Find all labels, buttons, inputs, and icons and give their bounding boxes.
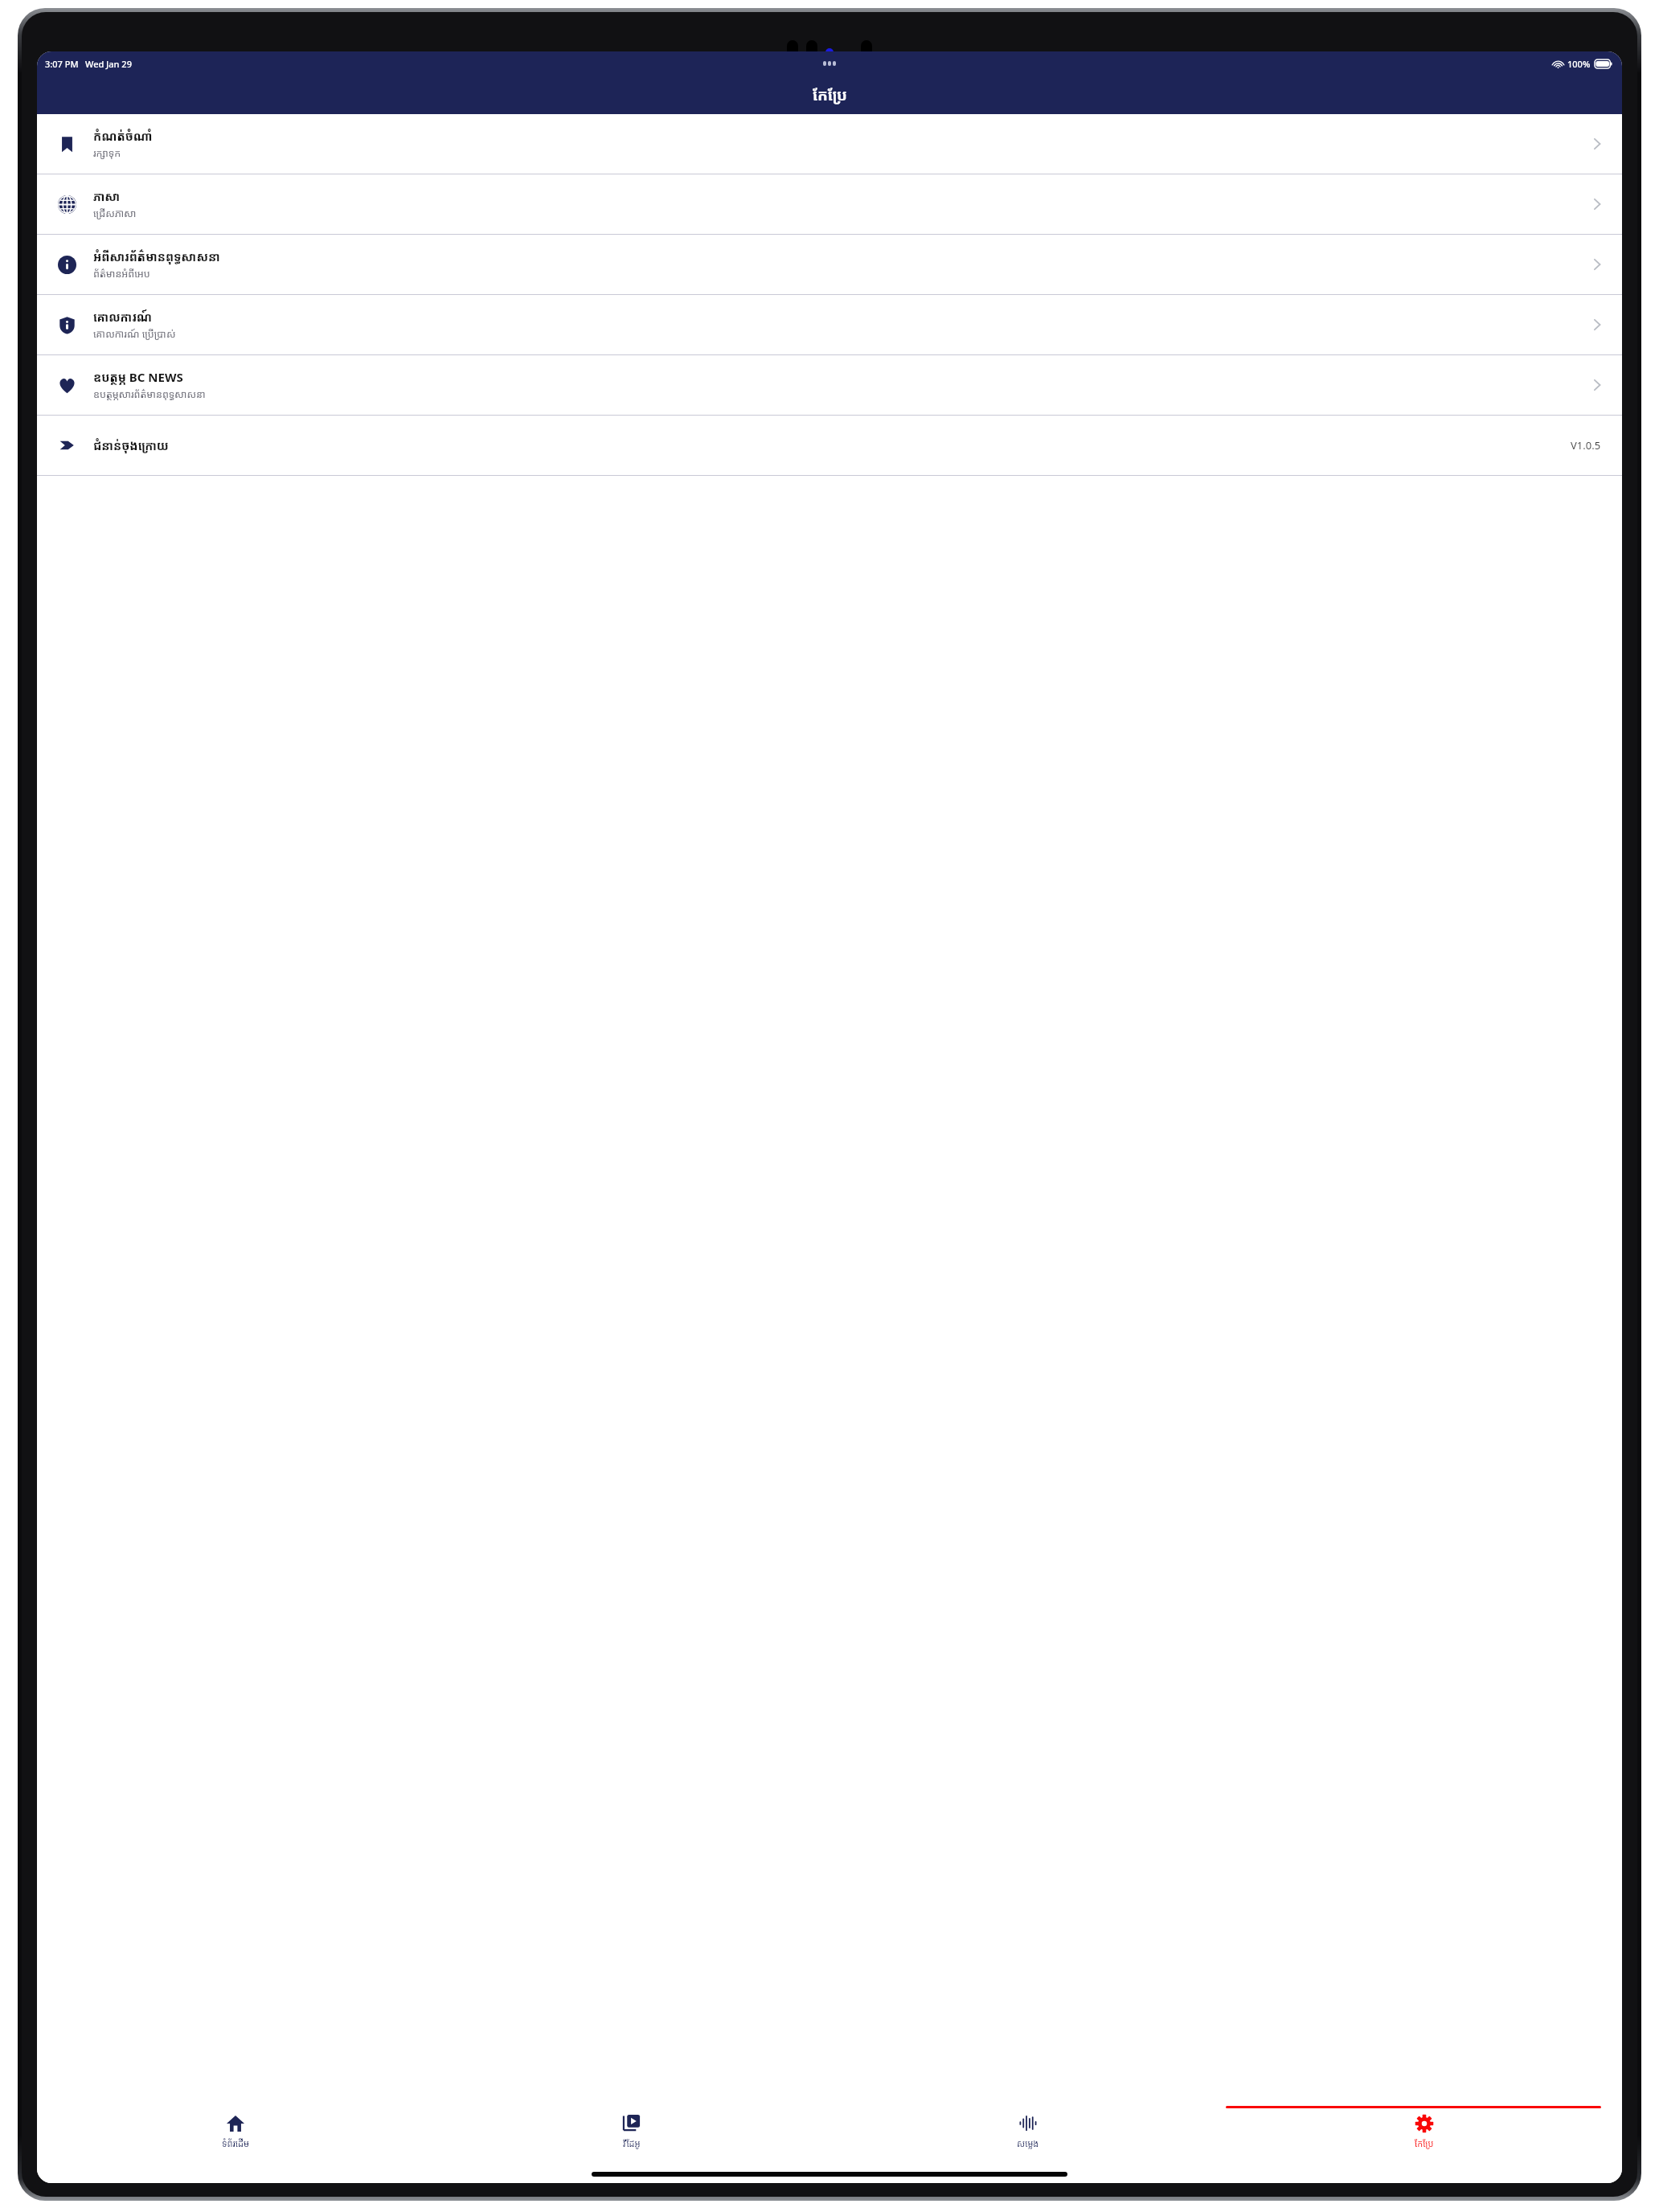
button[interactable]: Settings	[1226, 2106, 1622, 2165]
button[interactable]: អំពីសារព័ត៌មានពុទ្ធសាសនា	[37, 235, 1622, 294]
staticText: V1.0.5	[1571, 438, 1601, 453]
staticText: គោលការណ៍	[93, 309, 153, 325]
staticText: 3:07 PM	[45, 58, 79, 70]
staticText: រក្សាទុក	[93, 146, 121, 160]
staticText: 100%	[1567, 58, 1591, 70]
staticText: វីដែអូ	[623, 2137, 641, 2149]
staticText: អំពីសារព័ត៌មានពុទ្ធសាសនា	[93, 248, 220, 264]
button[interactable]: កំណត់ចំណាំ	[37, 114, 1622, 174]
button[interactable]: គោលការណ៍	[37, 295, 1622, 354]
staticText: សម្លេង	[1017, 2137, 1039, 2149]
button[interactable]: ឧបត្ថម្ភ BC NEWS	[37, 355, 1622, 415]
staticText: ជ្រើសភាសា	[93, 207, 137, 220]
staticText: ភាសា	[93, 188, 121, 204]
button[interactable]: ភាសា	[37, 174, 1622, 234]
staticText: កែប្រែ	[1415, 2137, 1434, 2149]
staticText: កែប្រែ	[813, 84, 847, 105]
staticText: ឧបត្ថម្ភ BC NEWS	[93, 369, 183, 385]
button[interactable]: Video	[433, 2106, 829, 2165]
staticText: ទំព័រដើម	[222, 2137, 249, 2149]
staticText: ជំនាន់ចុងក្រោយ	[93, 437, 169, 453]
staticText: កំណត់ចំណាំ	[93, 128, 153, 144]
staticText: ព័ត៌មានអំពីអេប	[93, 267, 150, 281]
button[interactable]: Audio	[829, 2106, 1226, 2165]
staticText: គោលការណ៍ ប្រើប្រាស់	[93, 327, 176, 341]
staticText: Wed Jan 29	[85, 58, 132, 70]
button[interactable]: ជំនាន់ចុងក្រោយ	[37, 416, 1622, 475]
button[interactable]: Home	[37, 2106, 433, 2165]
staticText: ឧបត្ថម្ភសារព័ត៌មានពុទ្ធសាសនា	[93, 387, 206, 401]
